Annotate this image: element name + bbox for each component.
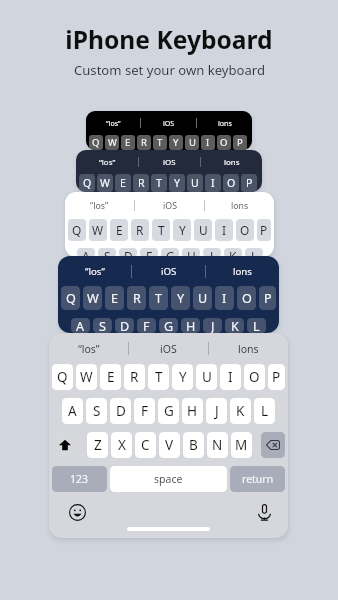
button[interactable]: 123 (52, 466, 107, 492)
button[interactable]: W (105, 135, 119, 150)
button[interactable]: J (203, 248, 221, 257)
button[interactable]: X (111, 432, 132, 458)
button[interactable]: “los” (65, 192, 134, 219)
button[interactable]: Emoji keyboard (66, 501, 88, 523)
button[interactable]: “los” (76, 150, 138, 174)
button[interactable]: A (71, 318, 90, 333)
button[interactable]: Z (87, 432, 108, 458)
button[interactable]: P (268, 364, 285, 390)
button[interactable]: U (187, 174, 203, 192)
button[interactable]: H (182, 398, 203, 424)
button[interactable]: Y (169, 135, 183, 150)
button[interactable]: P (233, 135, 247, 150)
button[interactable]: I (215, 219, 233, 241)
button[interactable]: G (159, 318, 178, 333)
button[interactable]: P (241, 174, 257, 192)
button[interactable]: S (93, 318, 112, 333)
button[interactable]: L (247, 318, 266, 333)
button[interactable]: K (224, 248, 242, 257)
button[interactable]: Q (52, 364, 73, 390)
button[interactable]: B (183, 432, 204, 458)
button[interactable]: H (181, 318, 200, 333)
button[interactable]: M (231, 432, 252, 458)
button[interactable]: O (244, 364, 265, 390)
button[interactable]: U (196, 364, 217, 390)
button[interactable]: U (193, 286, 212, 310)
button[interactable]: D (119, 248, 137, 257)
button[interactable]: I (205, 174, 221, 192)
button[interactable]: F (134, 398, 155, 424)
button[interactable]: W (97, 174, 113, 192)
button[interactable]: U (185, 135, 199, 150)
button[interactable]: F (140, 248, 158, 257)
button[interactable]: P (259, 286, 276, 310)
button[interactable]: R (127, 286, 146, 310)
button[interactable]: A (77, 248, 95, 257)
button[interactable]: E (105, 286, 124, 310)
button[interactable]: N (207, 432, 228, 458)
button[interactable]: D (110, 398, 131, 424)
button[interactable]: S (86, 398, 107, 424)
button[interactable]: T (152, 219, 170, 241)
button[interactable]: G (158, 398, 179, 424)
button[interactable]: J (203, 318, 222, 333)
button[interactable]: C (135, 432, 156, 458)
button[interactable]: S (98, 248, 116, 257)
button[interactable]: A (62, 398, 83, 424)
button[interactable]: Dictation (253, 501, 275, 523)
button[interactable]: U (194, 219, 212, 241)
button[interactable]: Y (173, 219, 191, 241)
button[interactable]: Y (172, 364, 193, 390)
button[interactable]: iOS (135, 192, 204, 219)
button[interactable]: W (83, 286, 102, 310)
button[interactable]: L (254, 398, 275, 424)
button[interactable]: I (220, 364, 241, 390)
button[interactable]: lons (197, 111, 252, 135)
button[interactable]: Backspace (261, 432, 285, 458)
button[interactable]: iOS (129, 333, 208, 364)
button[interactable]: D (115, 318, 134, 333)
button[interactable]: space (110, 466, 227, 492)
button[interactable]: E (115, 174, 131, 192)
button[interactable]: O (237, 286, 256, 310)
button[interactable]: Q (61, 286, 80, 310)
button[interactable]: “los” (49, 333, 128, 364)
button[interactable]: iOS (132, 256, 205, 286)
button[interactable]: T (151, 174, 167, 192)
button[interactable]: R (133, 174, 149, 192)
button[interactable]: lons (201, 150, 262, 174)
button[interactable]: R (124, 364, 145, 390)
button[interactable]: V (159, 432, 180, 458)
button[interactable]: Shift (52, 432, 78, 458)
button[interactable]: P (257, 219, 271, 241)
button[interactable]: W (76, 364, 97, 390)
button[interactable]: I (215, 286, 234, 310)
button[interactable]: W (89, 219, 107, 241)
button[interactable]: R (131, 219, 149, 241)
button[interactable]: K (225, 318, 244, 333)
button[interactable]: iOS (141, 111, 196, 135)
button[interactable]: F (137, 318, 156, 333)
button[interactable]: E (110, 219, 128, 241)
button[interactable]: Q (68, 219, 86, 241)
button[interactable]: Y (169, 174, 185, 192)
button[interactable]: T (153, 135, 167, 150)
button[interactable]: O (223, 174, 239, 192)
button[interactable]: T (149, 286, 168, 310)
button[interactable]: “los” (58, 256, 131, 286)
button[interactable]: “los” (86, 111, 140, 135)
button[interactable]: Y (171, 286, 190, 310)
button[interactable]: lons (206, 256, 279, 286)
button[interactable]: iOS (139, 150, 200, 174)
button[interactable]: Q (89, 135, 103, 150)
button[interactable]: E (100, 364, 121, 390)
button[interactable]: E (121, 135, 135, 150)
button[interactable]: G (161, 248, 179, 257)
button[interactable]: T (148, 364, 169, 390)
button[interactable]: return (230, 466, 285, 492)
button[interactable]: O (236, 219, 254, 241)
button[interactable]: Q (79, 174, 95, 192)
button[interactable]: I (201, 135, 215, 150)
button[interactable]: J (206, 398, 227, 424)
button[interactable]: R (137, 135, 151, 150)
